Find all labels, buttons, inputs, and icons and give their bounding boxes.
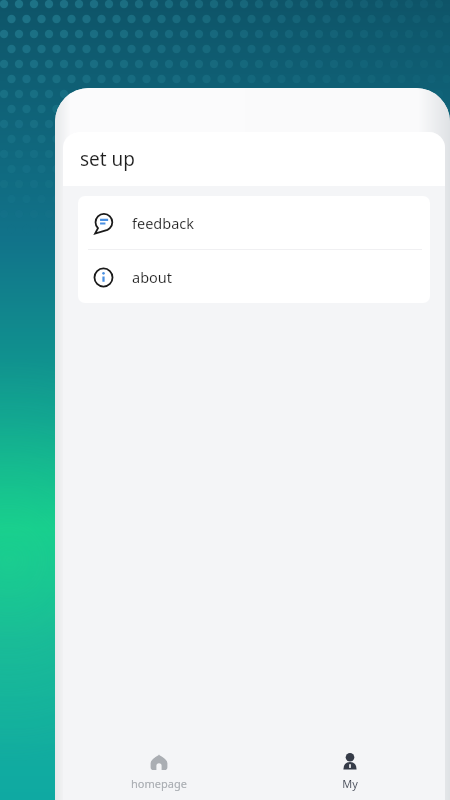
staticText: feedback bbox=[132, 213, 195, 233]
button[interactable]: feedback bbox=[78, 196, 430, 249]
button[interactable]: My bbox=[254, 742, 445, 800]
staticText: homepage bbox=[131, 776, 187, 791]
staticText: set up bbox=[80, 146, 136, 172]
button[interactable]: homepage bbox=[63, 742, 254, 800]
staticText: about bbox=[132, 267, 173, 287]
staticText: My bbox=[342, 776, 358, 791]
button[interactable]: about bbox=[78, 250, 430, 303]
